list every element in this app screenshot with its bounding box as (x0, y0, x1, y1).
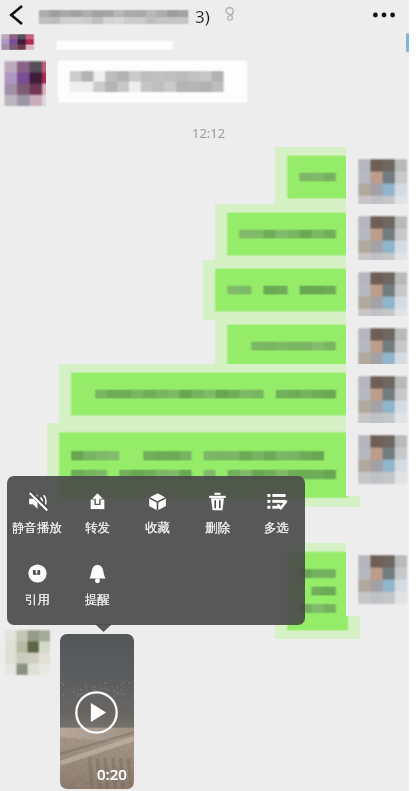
staticText: 提醒 (85, 592, 110, 608)
staticText: 删除 (205, 520, 230, 536)
button[interactable]: 静音播放 (7, 492, 67, 536)
staticText: 转发 (85, 520, 110, 536)
staticText: 3) (195, 5, 210, 28)
button[interactable]: 收藏 (127, 492, 187, 536)
button[interactable] (275, 543, 359, 638)
staticText: 12:12 (192, 124, 226, 142)
staticText: 0:20 (97, 764, 127, 784)
button[interactable] (203, 260, 359, 319)
button[interactable] (215, 316, 359, 375)
button[interactable]: 提醒 (67, 564, 127, 608)
button[interactable]: 引用 (7, 564, 67, 608)
staticText: 收藏 (145, 520, 170, 536)
staticText: 多选 (264, 520, 289, 536)
button[interactable]: 删除 (187, 492, 247, 536)
button[interactable] (46, 50, 258, 112)
button[interactable]: More options (362, 0, 406, 30)
button[interactable]: Play video (60, 634, 134, 789)
button[interactable] (47, 423, 359, 506)
staticText: 静音播放 (12, 520, 62, 536)
button[interactable]: 多选 (247, 492, 305, 536)
staticText: 引用 (25, 592, 50, 608)
button[interactable]: 转发 (67, 492, 127, 536)
button[interactable]: Back (0, 0, 32, 30)
button[interactable] (59, 364, 359, 423)
button[interactable] (215, 204, 359, 263)
button[interactable] (275, 147, 359, 206)
